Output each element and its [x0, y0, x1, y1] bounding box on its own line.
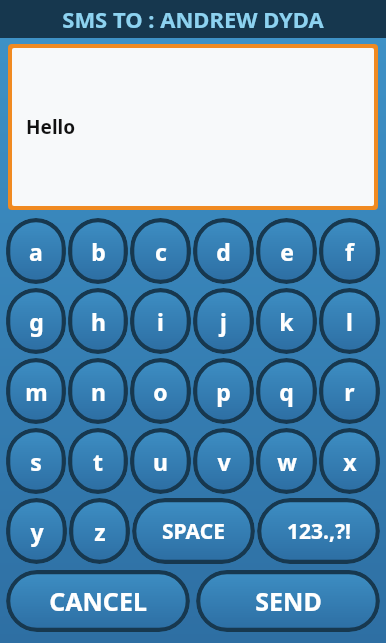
button[interactable]: j: [193, 288, 254, 354]
button[interactable]: m: [6, 358, 66, 424]
button[interactable]: w: [256, 428, 317, 494]
button[interactable]: g: [6, 288, 66, 354]
staticText: CANCEL: [49, 584, 147, 618]
button[interactable]: o: [130, 358, 191, 424]
button[interactable]: c: [130, 218, 191, 284]
staticText: m: [25, 376, 48, 407]
staticText: e: [280, 236, 294, 267]
staticText: x: [343, 446, 357, 477]
staticText: i: [157, 306, 164, 337]
button[interactable]: d: [193, 218, 254, 284]
staticText: SEND: [255, 584, 322, 618]
staticText: c: [155, 236, 167, 267]
button[interactable]: t: [68, 428, 128, 494]
button[interactable]: SEND: [196, 570, 380, 632]
staticText: d: [216, 236, 231, 267]
staticText: k: [279, 306, 294, 337]
button[interactable]: r: [319, 358, 380, 424]
staticText: r: [344, 376, 355, 407]
button[interactable]: z: [69, 498, 130, 564]
button[interactable]: e: [256, 218, 317, 284]
staticText: s: [30, 446, 42, 477]
staticText: SMS TO : ANDREW DYDA: [62, 4, 324, 34]
staticText: v: [217, 446, 231, 477]
staticText: u: [153, 446, 168, 477]
staticText: h: [91, 306, 106, 337]
button[interactable]: SPACE: [132, 498, 255, 564]
button[interactable]: q: [256, 358, 317, 424]
staticText: o: [153, 376, 168, 407]
button[interactable]: k: [256, 288, 317, 354]
button[interactable]: s: [6, 428, 66, 494]
staticText: q: [279, 376, 294, 407]
staticText: j: [220, 306, 227, 337]
staticText: b: [91, 236, 106, 267]
staticText: g: [29, 306, 44, 337]
button[interactable]: v: [193, 428, 254, 494]
staticText: f: [345, 236, 354, 267]
button[interactable]: b: [68, 218, 128, 284]
staticText: t: [93, 446, 103, 477]
button[interactable]: 123.,?!: [257, 498, 380, 564]
button[interactable]: l: [319, 288, 380, 354]
button[interactable]: p: [193, 358, 254, 424]
staticText: a: [29, 236, 43, 267]
button[interactable]: n: [68, 358, 128, 424]
staticText: 123.,?!: [287, 517, 351, 546]
staticText: z: [94, 516, 106, 547]
staticText: w: [277, 446, 297, 477]
button[interactable]: y: [6, 498, 67, 564]
button[interactable]: a: [6, 218, 66, 284]
button[interactable]: i: [130, 288, 191, 354]
staticText: l: [346, 306, 353, 337]
button[interactable]: h: [68, 288, 128, 354]
staticText: y: [30, 516, 44, 547]
staticText: n: [91, 376, 106, 407]
button[interactable]: f: [319, 218, 380, 284]
button[interactable]: x: [319, 428, 380, 494]
button[interactable]: CANCEL: [6, 570, 190, 632]
staticText: p: [216, 376, 231, 407]
button[interactable]: u: [130, 428, 191, 494]
staticText: SPACE: [162, 517, 225, 546]
staticText: Hello: [26, 114, 76, 140]
button[interactable]: Hello: [12, 48, 374, 206]
